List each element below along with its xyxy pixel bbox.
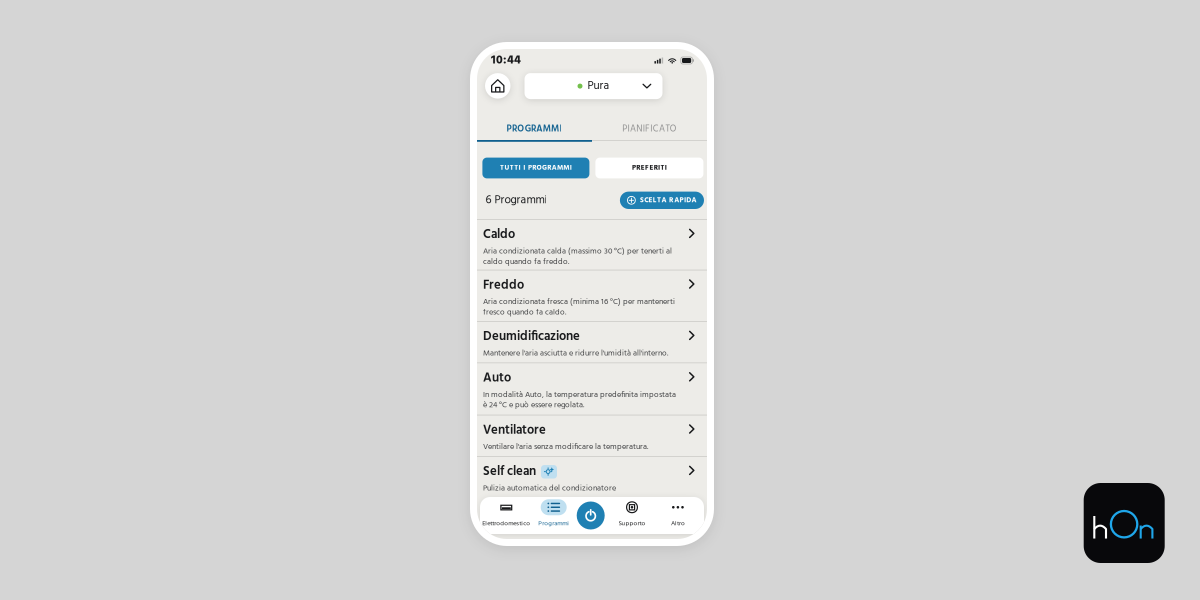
button[interactable]: Ventilatore: [477, 415, 707, 456]
button[interactable]: Self clean: [477, 456, 707, 501]
staticText: Auto: [483, 368, 511, 388]
button[interactable]: Home: [485, 73, 510, 99]
button[interactable]: Altro: [649, 497, 707, 534]
staticText: SCELTA RAPIDA: [640, 194, 696, 206]
button[interactable]: Freddo: [477, 270, 707, 321]
staticText: Altro: [671, 518, 685, 529]
button[interactable]: Elettrodomestico: [477, 497, 535, 534]
staticText: PIANIFICATO: [622, 121, 677, 136]
button[interactable]: SCELTA RAPIDA: [620, 192, 704, 209]
button[interactable]: Programmi: [525, 497, 583, 534]
staticText: 10:44: [491, 51, 521, 70]
staticText: Aria condizionata calda (massimo 30 °C) …: [483, 245, 672, 268]
staticText: Programmi: [538, 518, 569, 529]
button[interactable]: Pura: [524, 73, 662, 99]
staticText: Mantenere l'aria asciutta e ridurre l'um…: [483, 347, 668, 360]
button[interactable]: PIANIFICATO: [592, 118, 707, 140]
button[interactable]: Power: [577, 501, 605, 529]
staticText: Pura: [587, 77, 609, 95]
staticText: Elettrodomestico: [482, 518, 530, 529]
staticText: Pulizia automatica del condizionatore: [483, 482, 616, 495]
staticText: TUTTI I PROGRAMMI: [500, 162, 572, 174]
staticText: Supporto: [618, 518, 645, 529]
staticText: PREFERITI: [632, 162, 667, 174]
staticText: Deumidificazione: [483, 327, 580, 347]
staticText: Aria condizionata fresca (minima 16 °C) …: [483, 295, 675, 319]
button[interactable]: PREFERITI: [595, 158, 703, 178]
button[interactable]: Caldo: [477, 219, 707, 270]
button[interactable]: Deumidificazione: [477, 321, 707, 362]
staticText: In modalità Auto, la temperatura predefi…: [483, 388, 676, 412]
staticText: Freddo: [483, 275, 524, 296]
button[interactable]: Supporto: [603, 497, 661, 534]
staticText: Ventilatore: [483, 420, 546, 441]
button[interactable]: TUTTI I PROGRAMMI: [482, 158, 589, 178]
staticText: Ventilare l'aria senza modificare la tem…: [483, 440, 648, 453]
staticText: Caldo: [483, 225, 515, 245]
staticText: Self clean: [483, 462, 536, 482]
staticText: PROGRAMMI: [507, 121, 562, 136]
staticText: 6 Programmi: [485, 191, 547, 209]
button[interactable]: Auto: [477, 362, 707, 415]
button[interactable]: PROGRAMMI: [477, 118, 592, 140]
